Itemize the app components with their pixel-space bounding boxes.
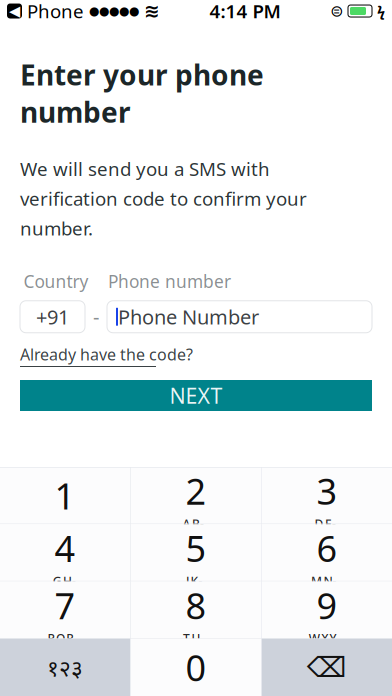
button[interactable]: 2 [131,467,261,524]
staticText: 0 [185,643,206,691]
button[interactable]: 5 [131,524,261,581]
staticText: WXYZ [309,630,345,646]
staticText: NEXT [169,381,222,410]
staticText: ●●●●● [89,4,139,18]
staticText: 5 [185,524,206,572]
button[interactable]: 3 [262,467,392,524]
staticText: MNO [311,573,343,589]
button[interactable]: 4 [0,524,130,581]
staticText: 2 [185,467,206,515]
button[interactable]: 8 [131,581,261,639]
button[interactable]: Delete [262,639,392,696]
staticText: Phone Number [118,303,259,330]
button[interactable]: 1 [0,467,130,524]
button[interactable]: 0 [131,639,261,696]
staticText: 3 [316,467,337,515]
staticText: Phone number [108,270,231,293]
staticText: ◀ [9,3,20,19]
button[interactable]: Phone Number [107,301,372,333]
staticText: - [93,303,99,330]
staticText: 4:14 PM [209,0,280,23]
staticText: 7 [55,581,76,629]
staticText: DEF [314,516,339,532]
button[interactable]: Switch to Devanagari numerals [0,639,130,696]
staticText: Country [23,270,88,293]
staticText: ⊜ [330,2,343,20]
staticText: ≋ [144,0,160,22]
staticText: Already have the code? [20,344,193,365]
button[interactable]: +91 [20,301,85,333]
staticText: ⌫ [307,651,347,683]
staticText: +91 [36,303,69,330]
staticText: 9 [316,581,337,629]
button[interactable]: 6 [262,524,392,581]
staticText: 4 [55,524,76,572]
staticText: ABC [183,516,209,532]
staticText: Enter your phone number [20,56,264,130]
staticText: 8 [185,581,206,629]
staticText: ϟ [377,1,385,21]
button[interactable]: Already have the code? [20,344,193,367]
staticText: We will send you a SMS with verification… [20,156,307,241]
staticText: GHI [53,573,77,589]
staticText: TUV [183,630,209,646]
button[interactable]: 9 [262,581,392,639]
staticText: १२३ [47,652,83,682]
button[interactable]: NEXT [20,380,372,411]
staticText: 6 [316,524,337,572]
staticText: PQRS [47,630,83,646]
staticText: 1 [55,472,76,519]
staticText: Phone [27,0,84,23]
button[interactable]: 7 [0,581,130,639]
staticText: JKL [186,573,206,589]
